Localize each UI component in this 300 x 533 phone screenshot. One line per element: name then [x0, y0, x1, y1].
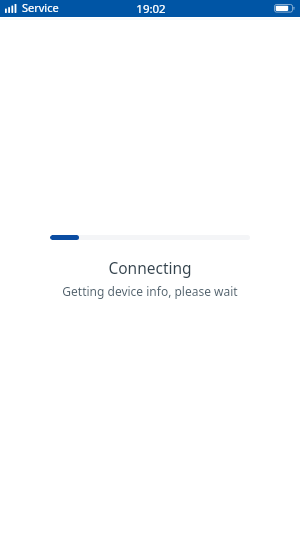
- staticText: Getting device info, please wait: [0, 283, 300, 299]
- other: Connection progress: [50, 235, 250, 240]
- other: Cellular signal strength: [5, 4, 19, 13]
- staticText: 19:02: [1, 1, 300, 17]
- staticText: Service: [22, 0, 59, 15]
- staticText: Connecting: [0, 257, 300, 278]
- other: Battery level: [274, 4, 295, 13]
